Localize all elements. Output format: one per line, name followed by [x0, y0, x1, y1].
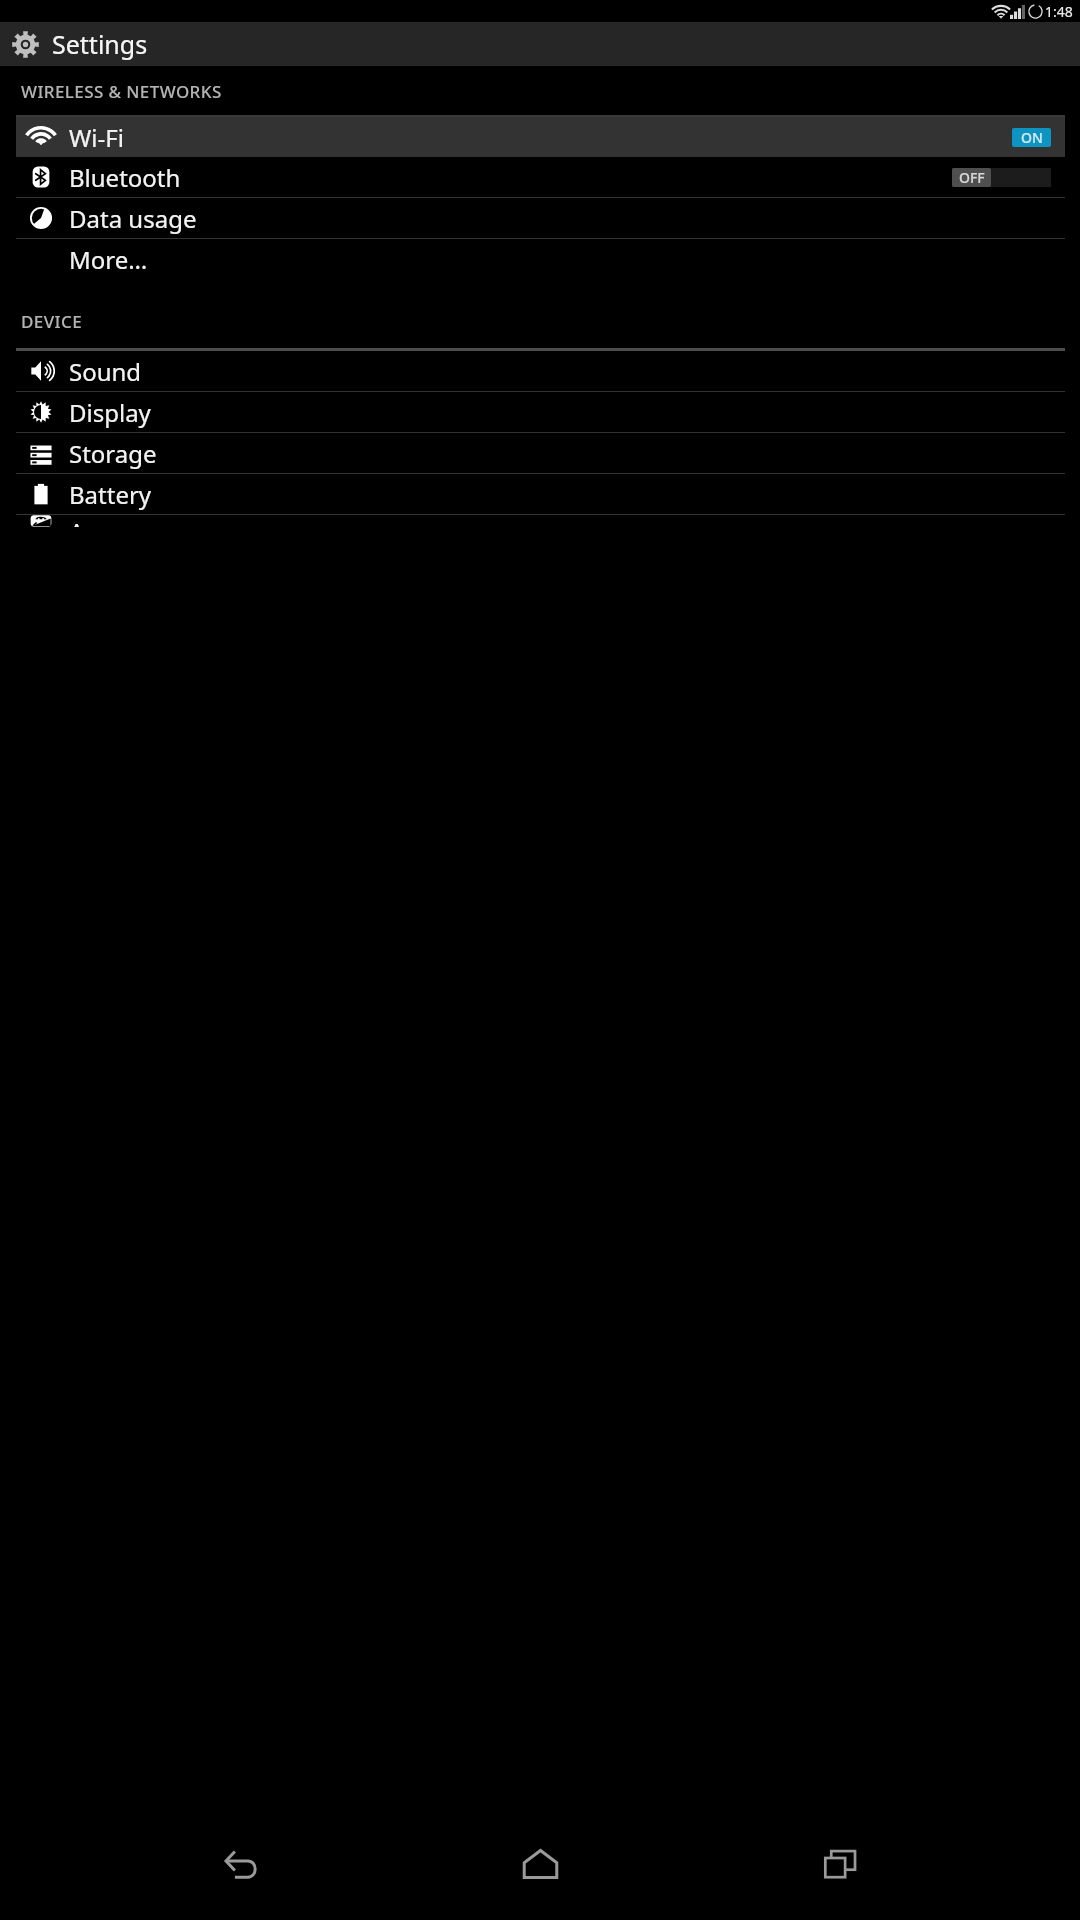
button[interactable]: Recent apps	[780, 1808, 900, 1920]
staticText: Storage	[69, 437, 157, 470]
staticText: More…	[69, 243, 148, 276]
staticText: WIRELESS & NETWORKS	[21, 80, 222, 103]
staticText: Apps	[69, 515, 126, 527]
staticText: Bluetooth	[69, 161, 181, 194]
staticText: Settings	[52, 27, 148, 61]
button[interactable]: Battery	[0, 474, 1080, 514]
staticText: Data usage	[69, 202, 197, 235]
button[interactable]: Display	[0, 392, 1080, 432]
button[interactable]: Bluetooth	[0, 157, 1080, 197]
staticText: Sound	[69, 355, 142, 388]
button[interactable]: Storage	[0, 433, 1080, 473]
button[interactable]: Back	[180, 1808, 300, 1920]
button[interactable]: OFF	[952, 157, 1051, 197]
button[interactable]: Wi-Fi	[16, 117, 1065, 157]
staticText: DEVICE	[21, 310, 83, 333]
staticText: OFF	[959, 168, 985, 187]
button[interactable]: Sound	[0, 351, 1080, 391]
staticText: Battery	[69, 478, 152, 511]
staticText: ON	[1021, 128, 1043, 147]
staticText: Display	[69, 396, 151, 429]
button[interactable]: Apps	[0, 515, 1080, 527]
button[interactable]: ON	[995, 117, 1051, 157]
staticText: 1:48	[1045, 2, 1073, 21]
button[interactable]: Home	[480, 1808, 600, 1920]
staticText: Wi-Fi	[69, 121, 124, 154]
button[interactable]: More…	[0, 239, 1080, 279]
button[interactable]: Data usage	[0, 198, 1080, 238]
